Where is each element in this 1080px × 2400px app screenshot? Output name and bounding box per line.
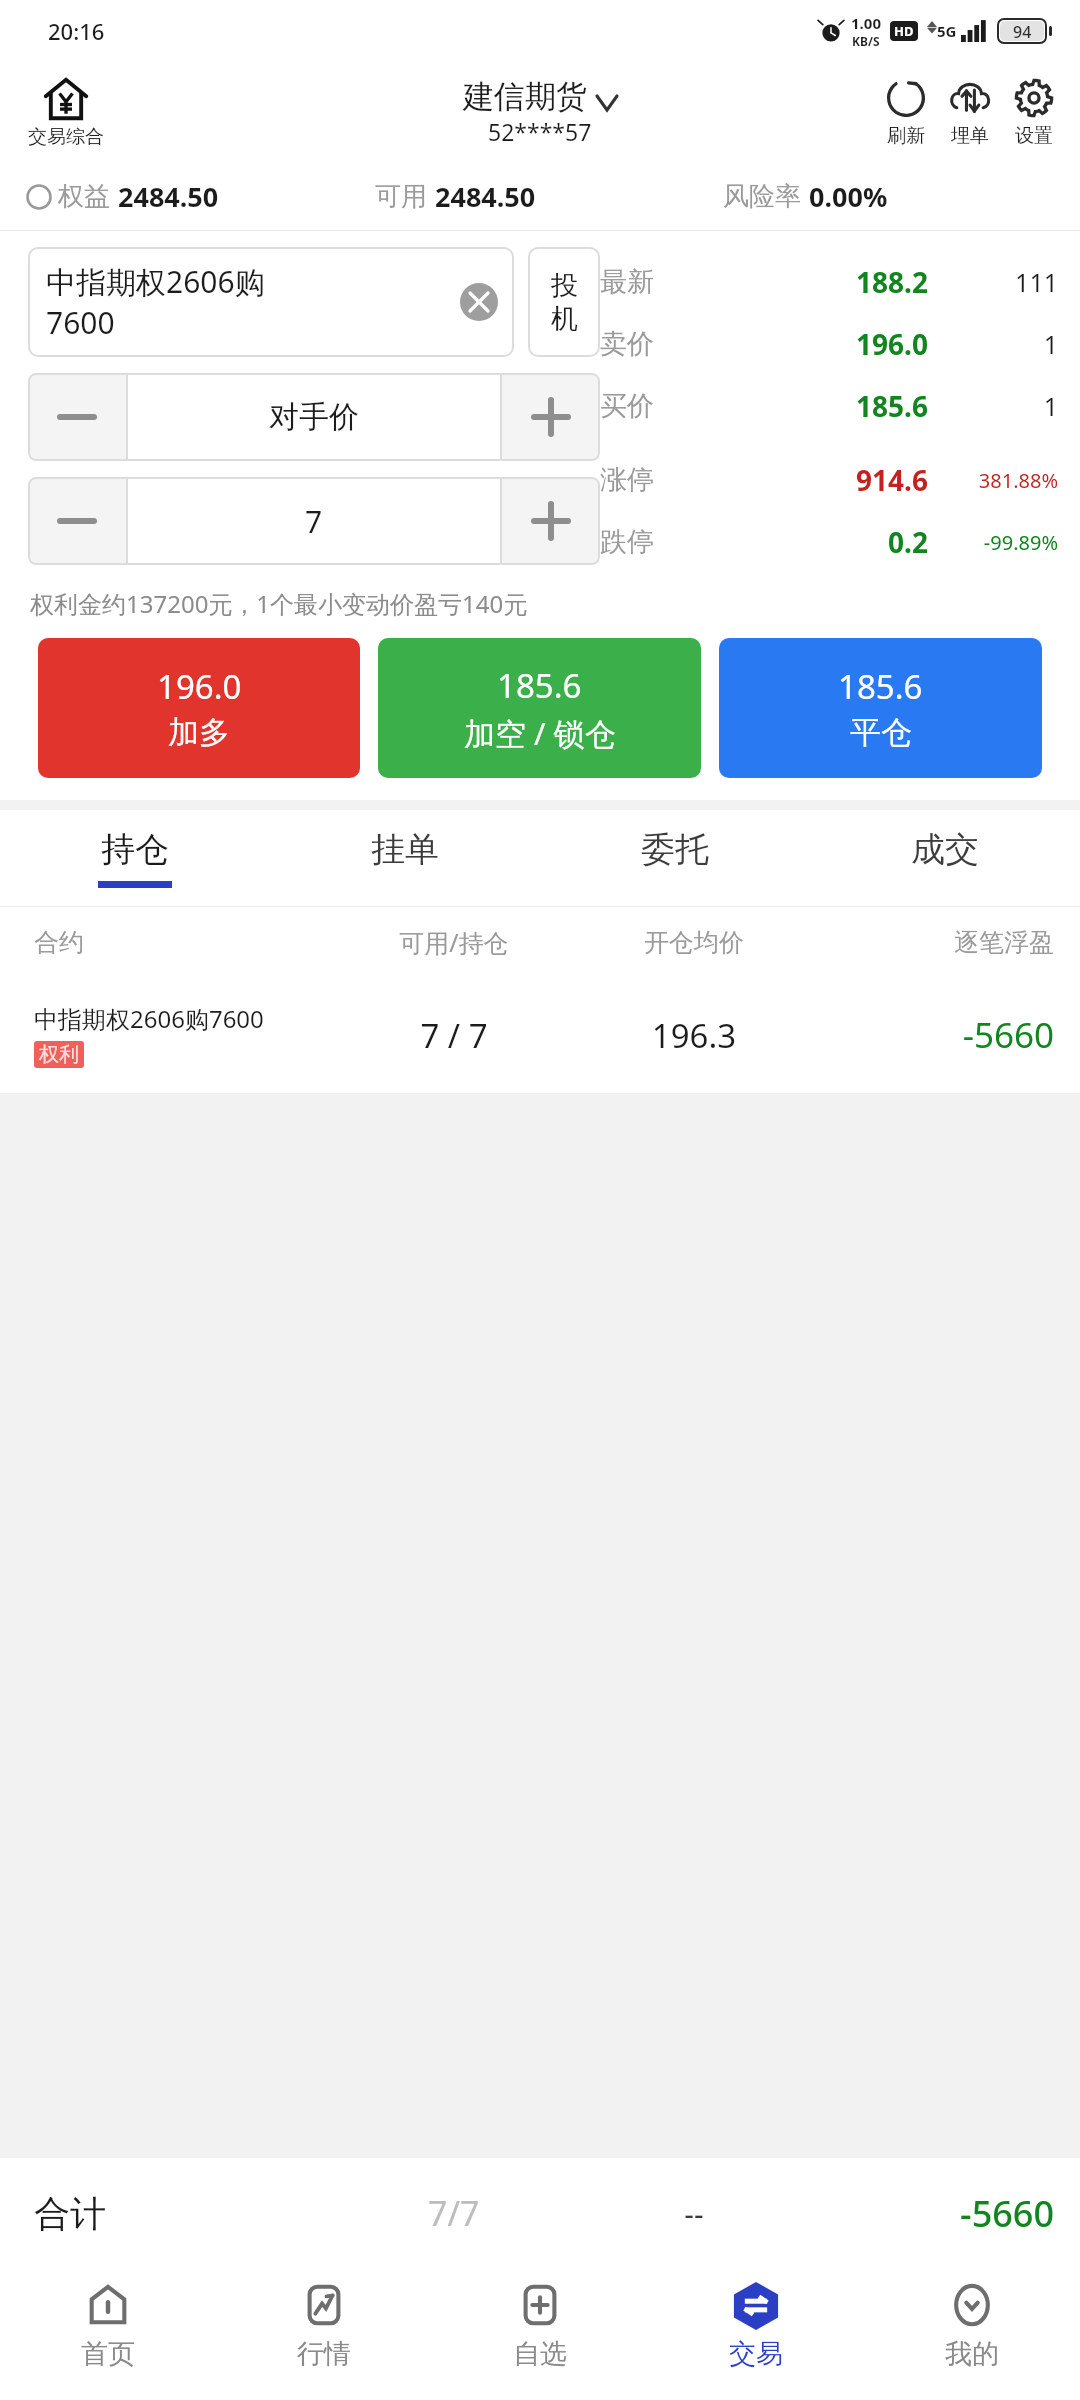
button[interactable]: 185.6 xyxy=(378,638,701,778)
staticText: 最新 xyxy=(600,265,690,299)
staticText: 交易 xyxy=(729,2337,783,2371)
staticText: 中指期权2606购7600 xyxy=(34,1002,264,1035)
staticText: 94 xyxy=(1013,21,1032,41)
staticText: 1 xyxy=(928,327,1058,361)
button[interactable]: 埋单 xyxy=(944,76,996,148)
staticText: 185.6 xyxy=(497,663,582,708)
staticText: 跌停 xyxy=(600,525,690,559)
button[interactable]: 投 机 xyxy=(528,247,600,357)
staticText: 平仓 xyxy=(850,713,912,752)
staticText: 风险率 xyxy=(723,180,801,213)
staticText: 52****57 xyxy=(488,116,592,147)
staticText: 196.0 xyxy=(157,664,242,709)
button[interactable]: 设置 xyxy=(1008,76,1060,148)
staticText: 买价 xyxy=(600,389,690,423)
staticText: 对手价 xyxy=(269,398,359,436)
staticText: 委托 xyxy=(641,828,709,871)
button[interactable]: 挂单 xyxy=(270,810,540,906)
button[interactable]: Decrease xyxy=(28,477,126,565)
staticText: 5G xyxy=(937,21,957,41)
staticText: 188.2 xyxy=(690,263,928,301)
staticText: 我的 xyxy=(945,2337,999,2371)
staticText: 2484.50 xyxy=(118,178,219,215)
button[interactable]: 交易综合 xyxy=(22,76,110,149)
staticText: 185.6 xyxy=(838,664,923,709)
staticText: 持仓 xyxy=(101,828,169,871)
staticText: 投 机 xyxy=(551,269,578,336)
staticText: 挂单 xyxy=(371,828,439,871)
staticText: -- xyxy=(574,2193,814,2234)
staticText: 111 xyxy=(928,265,1058,299)
staticText: 刷新 xyxy=(887,124,925,148)
staticText: 7/7 xyxy=(428,2190,480,2236)
staticText: 权利金约137200元，1个最小变动价盈亏140元 xyxy=(30,587,528,620)
staticText: HD xyxy=(894,22,914,40)
button[interactable]: 中指期权2606购7600 xyxy=(0,977,1080,1093)
staticText: 1.00 xyxy=(851,13,881,33)
staticText: 合约 xyxy=(34,927,334,958)
staticText: 合计 xyxy=(34,2191,334,2236)
staticText: -99.89% xyxy=(928,529,1058,556)
button[interactable]: 持仓 xyxy=(0,810,270,906)
staticText: 加空 / 锁仓 xyxy=(464,712,616,754)
staticText: 开仓均价 xyxy=(574,927,814,958)
staticText: 埋单 xyxy=(951,124,989,148)
staticText: 建信期货 xyxy=(463,77,587,116)
staticText: 7 xyxy=(305,501,323,542)
button[interactable]: 交易 xyxy=(648,2268,864,2400)
button[interactable]: 中指期权2606购 7600 xyxy=(28,247,514,357)
button[interactable]: 我的 xyxy=(864,2268,1080,2400)
staticText: 涨停 xyxy=(600,463,690,497)
staticText: 卖价 xyxy=(600,327,690,361)
staticText: 首页 xyxy=(81,2337,135,2371)
staticText: 可用/持仓 xyxy=(334,925,574,959)
staticText: 185.6 xyxy=(690,387,928,425)
staticText: 7 / 7 xyxy=(334,1013,574,1058)
staticText: 914.6 xyxy=(690,461,928,499)
staticText: 逐笔浮盈 xyxy=(814,927,1054,958)
button[interactable]: 对手价 xyxy=(128,373,500,461)
staticText: -5660 xyxy=(814,2189,1054,2238)
button[interactable]: 委托 xyxy=(540,810,810,906)
button[interactable]: 行情 xyxy=(216,2268,432,2400)
staticText: 20:16 xyxy=(48,16,105,46)
button[interactable]: 自选 xyxy=(432,2268,648,2400)
staticText: 中指期权2606购 7600 xyxy=(46,261,265,343)
button[interactable]: 刷新 xyxy=(880,76,932,148)
staticText: 设置 xyxy=(1015,124,1053,148)
button[interactable]: Increase xyxy=(502,477,600,565)
staticText: -5660 xyxy=(814,1011,1054,1059)
staticText: 可用 xyxy=(375,180,427,213)
staticText: 加多 xyxy=(168,713,230,752)
staticText: 1 xyxy=(928,389,1058,423)
staticText: 0.00% xyxy=(809,178,888,215)
staticText: 交易综合 xyxy=(28,125,104,149)
button[interactable]: 成交 xyxy=(810,810,1080,906)
staticText: 行情 xyxy=(297,2337,351,2371)
button[interactable]: 建信期货 xyxy=(455,77,625,147)
button[interactable]: 7 xyxy=(128,477,500,565)
staticText: 自选 xyxy=(513,2337,567,2371)
button[interactable]: Increase xyxy=(502,373,600,461)
staticText: 196.3 xyxy=(574,1013,814,1058)
staticText: 0.2 xyxy=(690,523,928,561)
staticText: 权利 xyxy=(39,1042,79,1067)
staticText: 2484.50 xyxy=(435,178,536,215)
staticText: 196.0 xyxy=(690,325,928,363)
staticText: 381.88% xyxy=(928,467,1058,494)
button[interactable]: 185.6 xyxy=(719,638,1042,778)
staticText: KB/S xyxy=(852,33,880,49)
button[interactable]: Clear xyxy=(460,283,498,321)
staticText: 权益 xyxy=(58,180,110,213)
button[interactable]: Decrease xyxy=(28,373,126,461)
staticText: 成交 xyxy=(911,828,979,871)
button[interactable]: 首页 xyxy=(0,2268,216,2400)
button[interactable]: 196.0 xyxy=(38,638,360,778)
